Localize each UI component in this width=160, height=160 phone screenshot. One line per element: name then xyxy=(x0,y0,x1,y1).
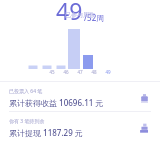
staticText: 49 xyxy=(101,69,115,75)
staticText: 46 xyxy=(59,69,73,75)
staticText: 累计获得收益 10696.11 元 xyxy=(9,97,104,108)
staticText: 47 xyxy=(73,69,87,75)
other: 查看累计提现 xyxy=(137,121,151,135)
staticText: 已参与周数 xyxy=(0,11,160,19)
staticText: 49 xyxy=(56,0,83,26)
staticText: 45 xyxy=(45,69,59,75)
staticText: 你有 3 笔待到余 xyxy=(9,118,45,125)
staticText: 已投票入 64 笔 xyxy=(9,88,43,95)
staticText: /52周 xyxy=(84,12,105,23)
other: 查看累计收益 xyxy=(137,91,151,105)
button[interactable]: 已投票入 64 笔 xyxy=(0,84,160,111)
button[interactable]: 你有 3 笔待到余 xyxy=(0,114,160,141)
staticText: 48 xyxy=(87,69,101,75)
staticText: 累计提现 1187.29 元 xyxy=(9,127,83,138)
